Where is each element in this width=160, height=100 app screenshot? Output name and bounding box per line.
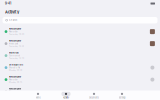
staticText: Yesterday 18:04 (9, 33, 24, 35)
staticText: Commented (9, 55, 20, 57)
button[interactable]: Mark Trust (0, 50, 160, 62)
staticText: Settings (118, 96, 125, 99)
staticText: Shared a file (9, 67, 20, 69)
staticText: New order (9, 31, 18, 33)
button[interactable]: Nike Company (0, 26, 160, 38)
staticText: Activity (5, 10, 19, 14)
staticText: Nike Company (9, 40, 21, 42)
staticText: Nike Company (9, 28, 21, 30)
staticText: Yesterday 16:22 (9, 45, 24, 47)
staticText: Monday 08:15 (9, 81, 22, 83)
staticText: Yesterday 12:10 (9, 57, 24, 59)
staticText: Nike Company (9, 88, 21, 90)
staticText: Monday 09:38 (9, 69, 22, 71)
staticText: Mark Trust (9, 52, 19, 54)
staticText: Documents (89, 96, 99, 99)
button[interactable]: Olivia Carlisle (0, 62, 160, 74)
button[interactable]: Search (0, 17, 160, 26)
button[interactable]: Nike Company (0, 86, 160, 98)
staticText: Nike Company (9, 76, 21, 78)
button[interactable]: Nike Company (0, 74, 160, 86)
staticText: New order (9, 79, 18, 81)
button[interactable]: Settings (108, 92, 136, 99)
button[interactable]: Documents (80, 92, 108, 99)
staticText: Activity (63, 96, 69, 99)
staticText: Search (9, 19, 17, 22)
button[interactable]: Nike Company (0, 38, 160, 50)
staticText: Olivia Carlisle (9, 64, 23, 66)
staticText: Home (35, 96, 40, 99)
button[interactable]: Home (24, 92, 52, 99)
staticText: Invoice paid (9, 43, 18, 45)
staticText: 9:41 (5, 2, 11, 5)
button[interactable]: Activity (52, 92, 80, 99)
